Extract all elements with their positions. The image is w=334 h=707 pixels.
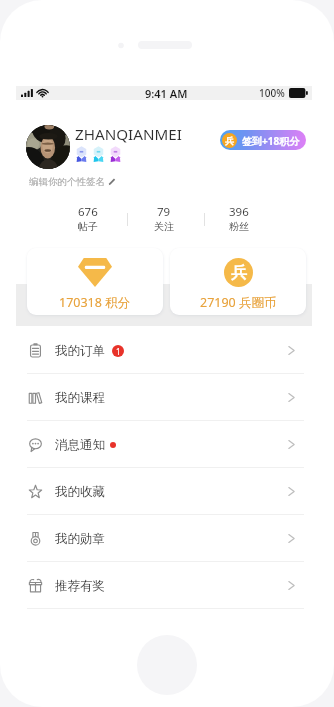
staticText: 我的勋章 (55, 531, 105, 547)
button[interactable]: 我的订单 (16, 327, 312, 374)
staticText: 帖子 (78, 220, 98, 233)
staticText: 9:41 AM (145, 86, 188, 100)
staticText: ZHANQIANMEI (75, 124, 182, 145)
button[interactable]: 676 (62, 204, 114, 233)
staticText: 粉丝 (229, 220, 249, 233)
button[interactable]: 79 (138, 204, 190, 233)
button[interactable]: 编辑你的个性签名 (29, 176, 116, 188)
button[interactable]: Avatar (26, 125, 70, 169)
button[interactable]: 推荐有奖 (16, 562, 312, 609)
staticText: 消息通知 (55, 437, 105, 453)
button[interactable]: 兵 (170, 248, 306, 315)
staticText: 676 (78, 204, 98, 220)
staticText: 我的课程 (55, 390, 105, 406)
staticText: 79 (157, 204, 171, 220)
staticText: 兵 (231, 263, 247, 283)
staticText: 1 (116, 346, 121, 357)
staticText: 推荐有奖 (55, 578, 105, 594)
staticText: 兵 (225, 135, 234, 146)
staticText: 我的订单 (55, 343, 105, 359)
staticText: 396 (229, 204, 249, 220)
button[interactable]: 消息通知 (16, 421, 312, 468)
staticText: 27190 兵圈币 (200, 294, 277, 311)
button[interactable]: 170318 积分 (27, 248, 163, 315)
button[interactable]: 396 (213, 204, 265, 233)
staticText: 100% (259, 86, 285, 100)
button[interactable]: 我的课程 (16, 374, 312, 421)
staticText: 签到+18积分 (242, 134, 300, 148)
staticText: 编辑你的个性签名 (29, 176, 105, 188)
button[interactable]: 我的收藏 (16, 468, 312, 515)
button[interactable]: 我的勋章 (16, 515, 312, 562)
staticText: 我的收藏 (55, 484, 105, 500)
staticText: 关注 (154, 220, 174, 233)
button[interactable]: 兵 (220, 130, 306, 150)
staticText: 170318 积分 (59, 294, 131, 311)
